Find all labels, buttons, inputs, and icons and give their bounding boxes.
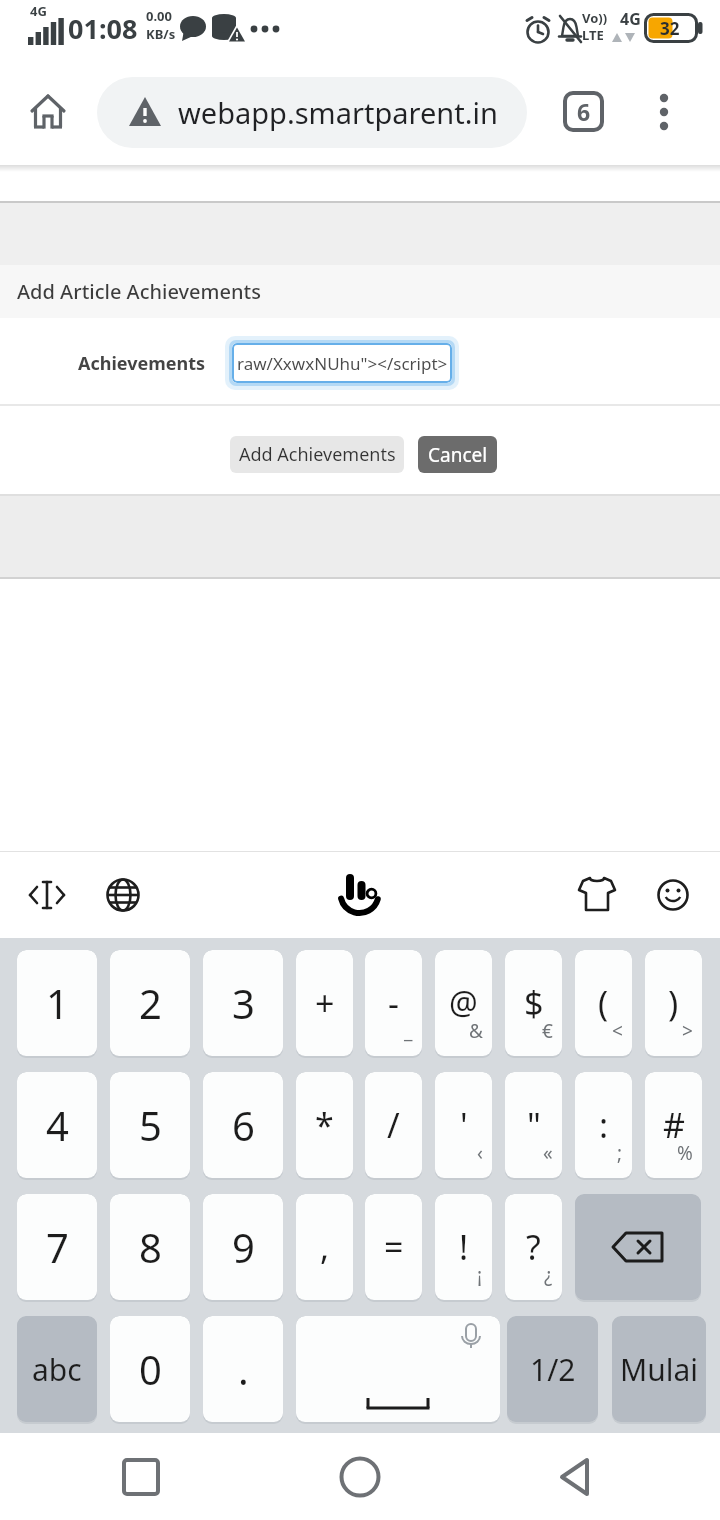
staticText: 0: [139, 1342, 162, 1396]
button[interactable]: 1/2: [507, 1316, 598, 1424]
staticText: KB/s: [146, 25, 176, 43]
staticText: 9: [232, 1220, 255, 1274]
staticText: =: [384, 1224, 404, 1270]
staticText: _: [404, 1018, 413, 1044]
button[interactable]: *: [296, 1072, 353, 1180]
button[interactable]: [646, 92, 682, 132]
button[interactable]: Cancel: [418, 436, 497, 473]
staticText: <: [612, 1018, 623, 1044]
staticText: +: [315, 980, 335, 1026]
button[interactable]: :: [575, 1072, 632, 1180]
staticText: Cancel: [428, 442, 488, 468]
button[interactable]: [330, 862, 390, 922]
button[interactable]: 4: [17, 1072, 97, 1180]
staticText: ": [527, 1102, 541, 1148]
staticText: «: [543, 1140, 553, 1166]
staticText: :: [599, 1102, 609, 1148]
staticText: .: [238, 1342, 249, 1396]
staticText: Achievements: [78, 351, 206, 376]
staticText: !: [459, 1224, 469, 1270]
staticText: 32: [660, 17, 680, 40]
button[interactable]: 1: [17, 950, 97, 1058]
button[interactable]: [648, 870, 698, 920]
button[interactable]: 8: [110, 1194, 190, 1302]
staticText: 4G: [30, 2, 47, 20]
button[interactable]: #: [645, 1072, 702, 1180]
staticText: (: [598, 980, 609, 1026]
button[interactable]: 7: [17, 1194, 97, 1302]
staticText: 5: [139, 1098, 162, 1152]
button[interactable]: [575, 1194, 701, 1302]
staticText: 1/2: [530, 1349, 576, 1390]
button[interactable]: Add Achievements: [230, 436, 404, 473]
button[interactable]: +: [296, 950, 353, 1058]
staticText: abc: [32, 1349, 82, 1390]
button[interactable]: [339, 1456, 381, 1498]
staticText: /: [387, 1102, 400, 1148]
staticText: Add Achievements: [239, 442, 396, 467]
button[interactable]: abc: [17, 1316, 97, 1424]
staticText: ¡: [477, 1262, 483, 1288]
button[interactable]: Mulai: [612, 1316, 706, 1424]
button[interactable]: ): [645, 950, 702, 1058]
button[interactable]: [557, 1456, 599, 1498]
staticText: ': [460, 1102, 468, 1148]
button[interactable]: 3: [203, 950, 283, 1058]
button[interactable]: webapp.smartparent.in: [97, 77, 527, 148]
button[interactable]: 9: [203, 1194, 283, 1302]
staticText: >: [682, 1018, 693, 1044]
button[interactable]: -: [365, 950, 422, 1058]
staticText: ): [668, 980, 679, 1026]
staticText: ;: [617, 1140, 623, 1166]
button[interactable]: @: [435, 950, 492, 1058]
staticText: 4: [46, 1098, 69, 1152]
staticText: @: [449, 981, 478, 1025]
button[interactable]: (: [575, 950, 632, 1058]
staticText: *: [315, 1102, 334, 1148]
staticText: -: [388, 980, 399, 1026]
button[interactable]: ': [435, 1072, 492, 1180]
staticText: 01:08: [68, 10, 138, 47]
staticText: 7: [46, 1220, 69, 1274]
button[interactable]: 5: [110, 1072, 190, 1180]
button[interactable]: [296, 1316, 500, 1424]
button[interactable]: $: [505, 950, 562, 1058]
staticText: 8: [139, 1220, 162, 1274]
button[interactable]: .: [203, 1316, 283, 1424]
button[interactable]: ?: [505, 1194, 562, 1302]
button[interactable]: raw/XxwxNUhu"></script>: [232, 343, 452, 383]
button[interactable]: [120, 1456, 162, 1498]
staticText: LTE: [582, 26, 604, 42]
button[interactable]: 2: [110, 950, 190, 1058]
staticText: 4G: [620, 8, 641, 30]
staticText: #: [663, 1102, 685, 1148]
button[interactable]: [22, 870, 72, 920]
button[interactable]: 0: [110, 1316, 190, 1424]
button[interactable]: /: [365, 1072, 422, 1180]
staticText: 6: [577, 96, 591, 127]
button[interactable]: [98, 870, 148, 920]
button[interactable]: !: [435, 1194, 492, 1302]
staticText: Mulai: [620, 1349, 699, 1390]
button[interactable]: ,: [296, 1194, 353, 1302]
button[interactable]: 6: [203, 1072, 283, 1180]
staticText: Vo)): [582, 9, 608, 25]
staticText: Add Article Achievements: [17, 278, 261, 305]
staticText: ?: [526, 1224, 541, 1270]
button[interactable]: ": [505, 1072, 562, 1180]
button[interactable]: 6: [563, 91, 604, 132]
staticText: 0.00: [146, 7, 172, 25]
button[interactable]: [572, 870, 622, 920]
button[interactable]: =: [365, 1194, 422, 1302]
staticText: raw/XxwxNUhu"></script>: [237, 352, 448, 375]
staticText: &: [469, 1018, 483, 1044]
staticText: 6: [232, 1098, 255, 1152]
staticText: 3: [232, 976, 255, 1030]
staticText: %: [677, 1140, 693, 1166]
staticText: 2: [139, 976, 162, 1030]
staticText: 1: [46, 976, 69, 1030]
button[interactable]: [24, 88, 72, 136]
staticText: €: [542, 1018, 553, 1044]
staticText: ,: [320, 1224, 330, 1270]
staticText: ‹: [477, 1140, 483, 1166]
